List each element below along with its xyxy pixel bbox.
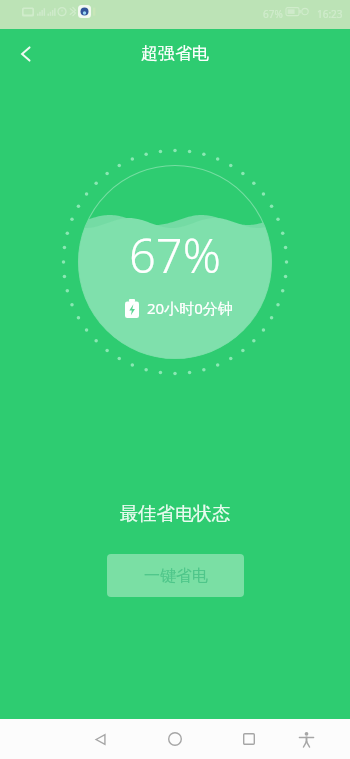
staticText: 67%: [263, 7, 283, 21]
button[interactable]: Accessibility: [286, 719, 326, 759]
button[interactable]: Back: [80, 719, 120, 759]
button[interactable]: Recents: [229, 719, 269, 759]
button[interactable]: Back: [6, 34, 46, 74]
staticText: 16:23: [317, 7, 343, 21]
staticText: 20小时0分钟: [147, 298, 233, 318]
button[interactable]: 一键省电: [107, 554, 244, 597]
button[interactable]: Home: [155, 719, 195, 759]
staticText: 最佳省电状态: [0, 502, 350, 525]
staticText: 超强省电: [141, 43, 209, 64]
staticText: 67%: [129, 223, 221, 287]
staticText: 一键省电: [144, 566, 208, 586]
